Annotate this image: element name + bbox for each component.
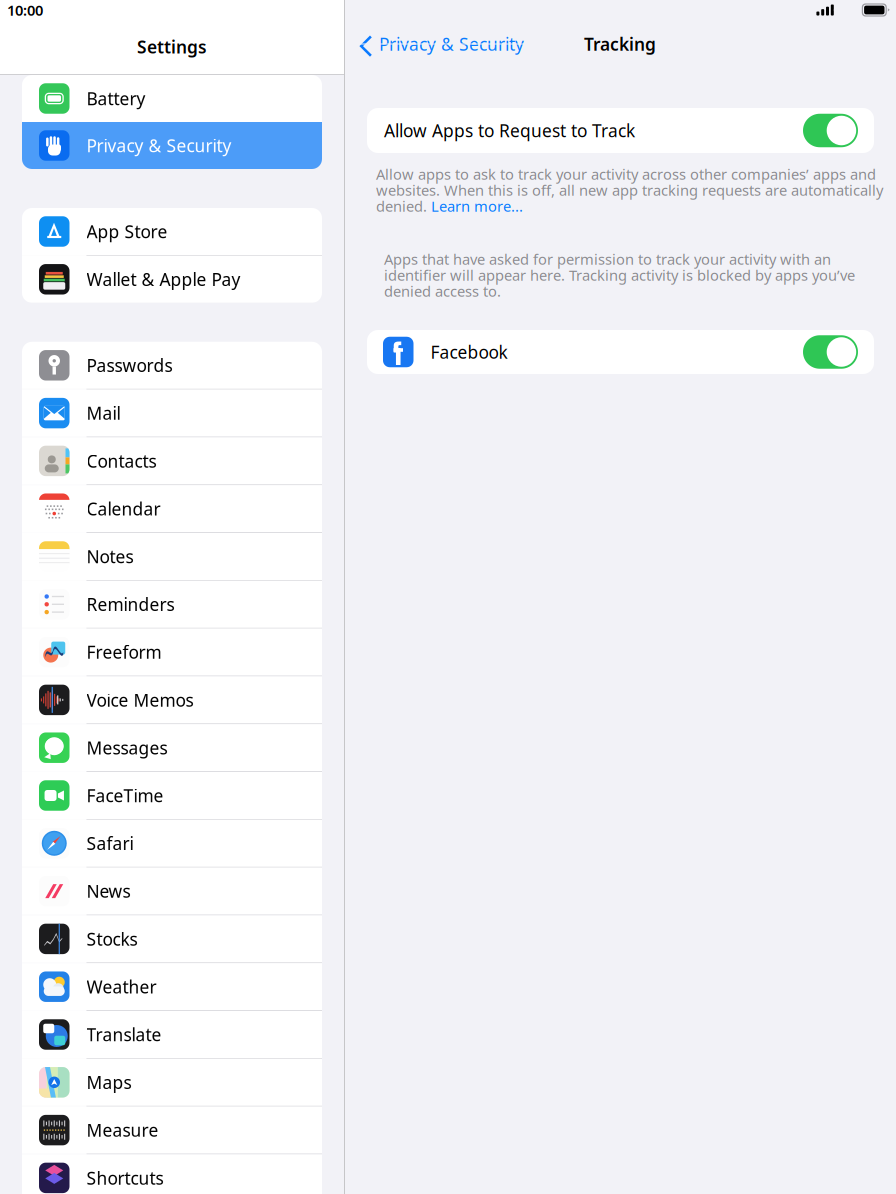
staticText: Stocks — [86, 927, 137, 950]
staticText: Voice Memos — [86, 688, 193, 711]
staticText: Notes — [86, 545, 133, 568]
button[interactable]: Facebook tracking — [803, 335, 858, 369]
button[interactable]: FaceTime — [22, 772, 322, 819]
staticText: FaceTime — [86, 784, 163, 807]
button[interactable]: Battery — [22, 75, 322, 122]
button[interactable]: Voice Memos — [22, 676, 322, 723]
button[interactable]: Translate — [22, 1011, 322, 1058]
staticText: Calendar — [86, 497, 160, 520]
staticText: Learn more... — [431, 196, 523, 216]
staticText: Facebook — [430, 340, 507, 363]
button[interactable]: Mail — [22, 390, 322, 437]
button[interactable]: News — [22, 868, 322, 915]
button[interactable]: Wallet & Apple Pay — [22, 256, 322, 303]
staticText: Freeform — [86, 641, 161, 664]
staticText: Allow apps to ask to track your activity… — [376, 164, 876, 184]
button[interactable]: Allow Apps to Request to Track — [803, 114, 858, 147]
staticText: Wallet & Apple Pay — [86, 268, 240, 291]
staticText: Apps that have asked for permission to t… — [384, 249, 831, 269]
staticText: 10:00 — [7, 0, 43, 20]
staticText: Mail — [86, 402, 120, 425]
button[interactable]: Weather — [22, 963, 322, 1010]
staticText: websites. When this is off, all new app … — [376, 180, 883, 200]
button[interactable]: Shortcuts — [22, 1154, 322, 1194]
staticText: News — [86, 880, 130, 903]
button[interactable]: Privacy & Security — [345, 22, 534, 66]
button[interactable]: Privacy & Security — [22, 122, 322, 169]
staticText: Privacy & Security — [86, 134, 231, 157]
button[interactable]: Notes — [22, 533, 322, 580]
staticText: Battery — [86, 87, 145, 110]
button[interactable]: Contacts — [22, 437, 322, 484]
staticText: Passwords — [86, 354, 172, 377]
button[interactable]: Calendar — [22, 485, 322, 532]
button[interactable]: Passwords — [22, 342, 322, 389]
staticText: Contacts — [86, 449, 156, 472]
staticText: Allow Apps to Request to Track — [384, 119, 635, 142]
staticText: Privacy & Security — [379, 32, 524, 55]
staticText: denied. — [376, 196, 431, 216]
button[interactable]: App Store — [22, 208, 322, 255]
button[interactable]: Messages — [22, 724, 322, 771]
staticText: denied access to. — [384, 281, 501, 301]
staticText: Tracking — [584, 32, 656, 55]
button[interactable]: Stocks — [22, 915, 322, 962]
staticText: Weather — [86, 975, 156, 998]
staticText: Reminders — [86, 593, 174, 616]
staticText: Maps — [86, 1071, 131, 1094]
button[interactable]: Learn more... — [431, 196, 523, 216]
button[interactable]: Measure — [22, 1107, 322, 1154]
staticText: App Store — [86, 220, 167, 243]
staticText: Measure — [86, 1119, 158, 1142]
staticText: Messages — [86, 736, 167, 759]
button[interactable]: Freeform — [22, 629, 322, 676]
button[interactable]: Safari — [22, 820, 322, 867]
staticText: Settings — [137, 35, 207, 58]
staticText: Translate — [86, 1023, 161, 1046]
button[interactable]: Maps — [22, 1059, 322, 1106]
button[interactable]: Reminders — [22, 581, 322, 628]
staticText: Safari — [86, 832, 133, 855]
staticText: identifier will appear here. Tracking ac… — [384, 265, 855, 285]
staticText: Shortcuts — [86, 1166, 163, 1189]
